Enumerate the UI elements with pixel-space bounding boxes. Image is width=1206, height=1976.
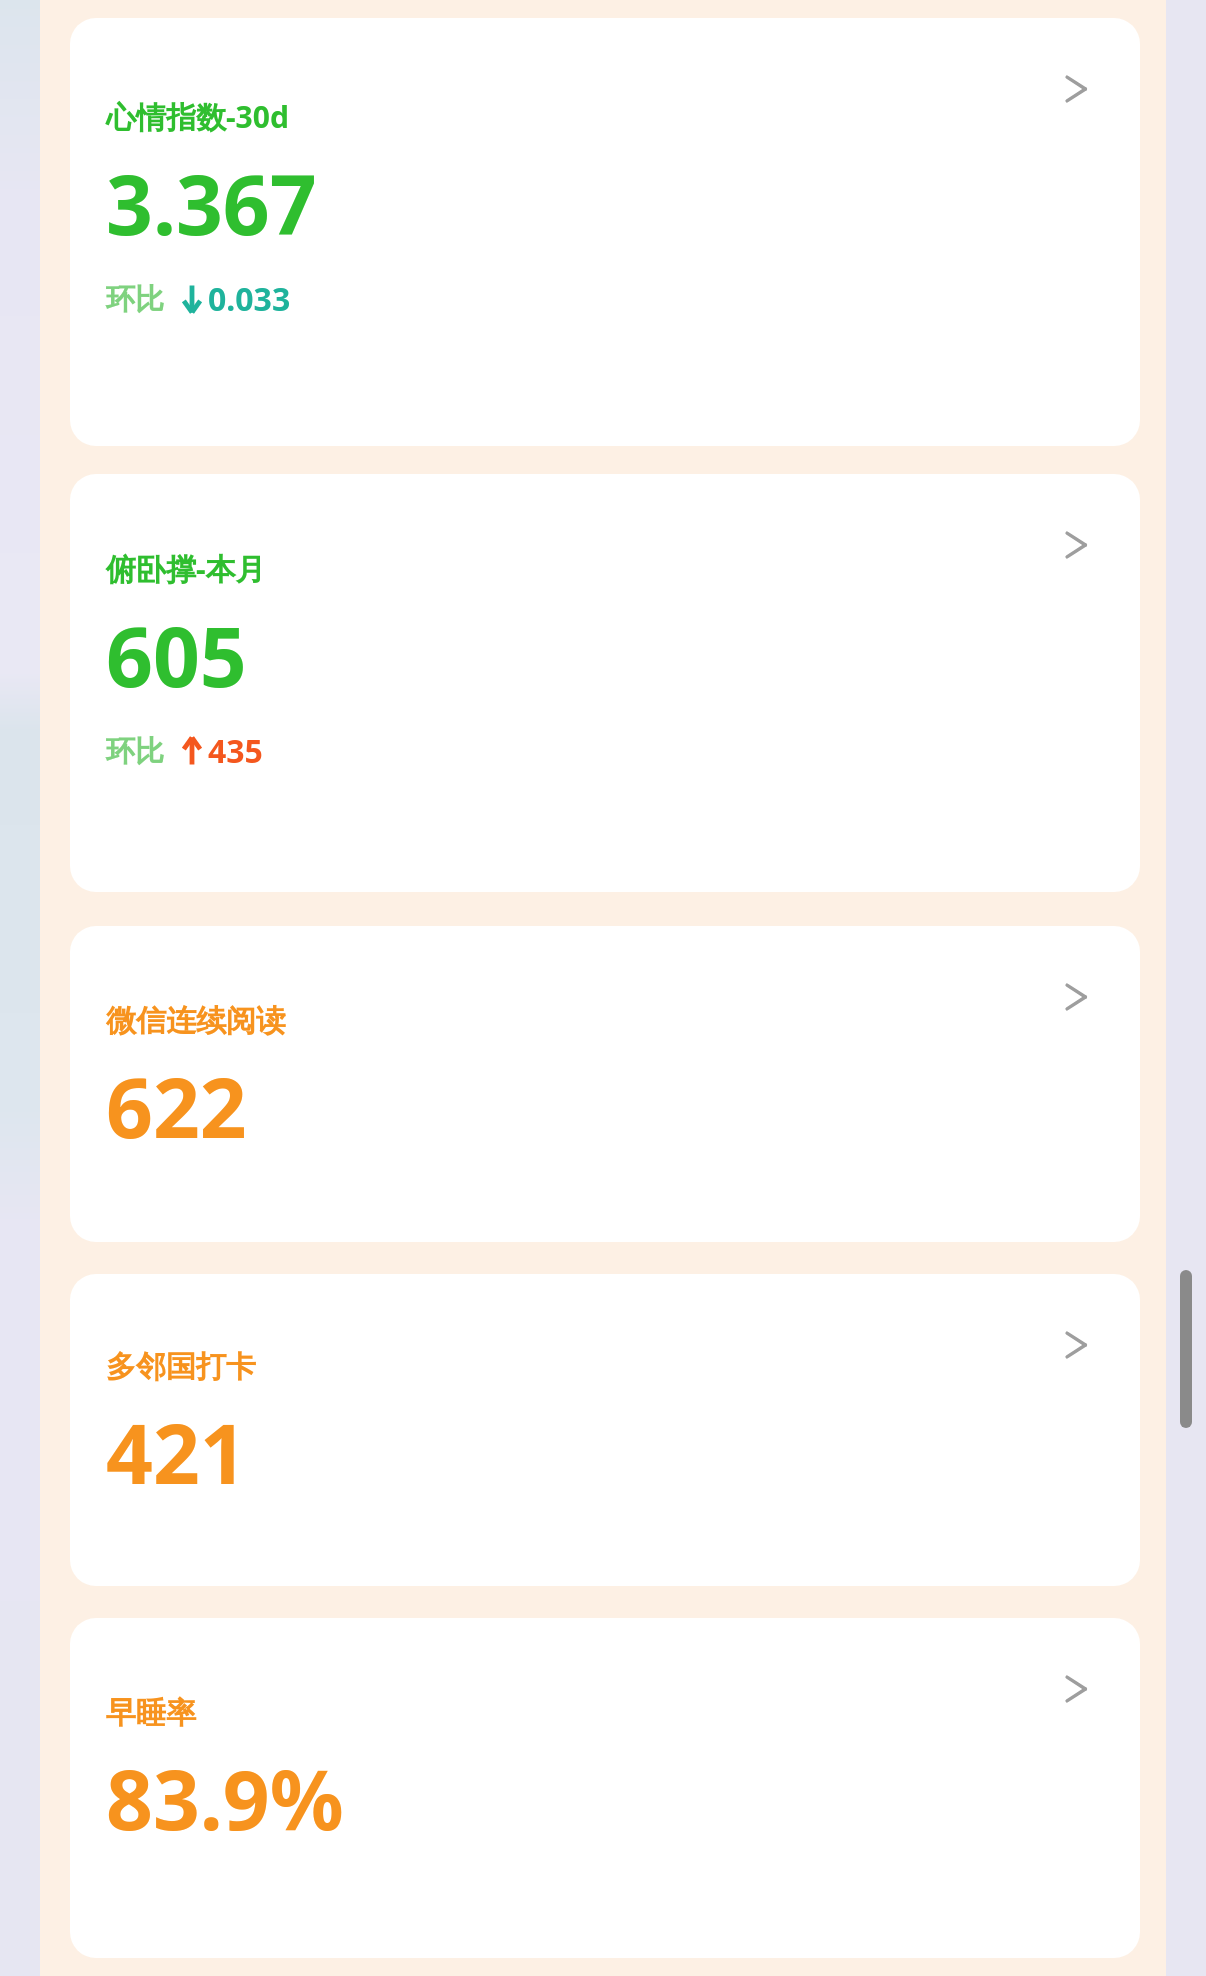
staticText: 605	[106, 599, 247, 711]
other: View details	[1056, 1322, 1102, 1368]
button[interactable]: View details	[70, 474, 1140, 892]
staticText: 421	[106, 1396, 247, 1508]
staticText: 早睡率	[106, 1694, 196, 1732]
staticText: 俯卧撑-本月	[106, 548, 266, 589]
button[interactable]: View details	[70, 1274, 1140, 1586]
other: View details	[1056, 1666, 1102, 1712]
staticText: 435	[208, 729, 263, 773]
staticText: 0.033	[208, 277, 291, 321]
staticText: 环比	[106, 281, 164, 318]
staticText: 622	[106, 1050, 247, 1162]
button[interactable]: View details	[70, 926, 1140, 1242]
staticText: 83.9%	[106, 1742, 344, 1854]
staticText: 多邻国打卡	[106, 1348, 256, 1386]
staticText: 心情指数-30d	[106, 96, 289, 137]
staticText: 微信连续阅读	[106, 1002, 286, 1040]
other: View details	[1056, 522, 1102, 568]
button[interactable]: View details	[70, 1618, 1140, 1958]
other: View details	[1056, 66, 1102, 112]
button[interactable]: View details	[70, 18, 1140, 446]
staticText: 3.367	[106, 147, 317, 259]
other: View details	[1056, 974, 1102, 1020]
staticText: 环比	[106, 733, 164, 770]
